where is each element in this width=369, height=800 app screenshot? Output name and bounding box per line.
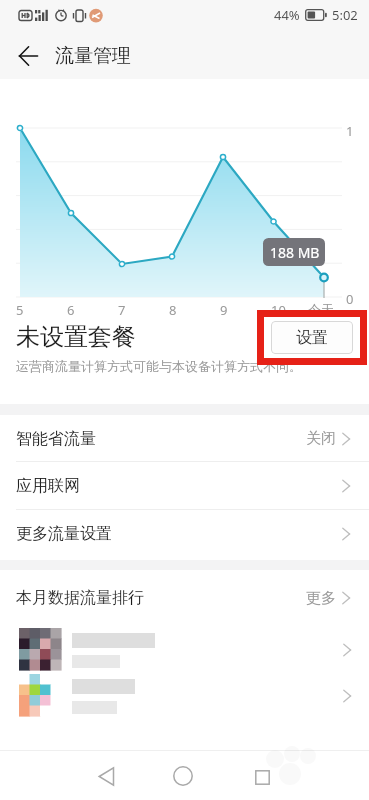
button[interactable]: 设置	[271, 321, 353, 354]
staticText: 未设置套餐	[16, 322, 136, 352]
staticText: 8	[169, 301, 177, 319]
staticText: 1	[346, 122, 354, 140]
button[interactable]: 本月数据流量排行	[0, 570, 369, 626]
staticText: 更多流量设置	[16, 524, 112, 544]
staticText: 今天	[308, 301, 334, 317]
staticText: 5:02	[332, 6, 358, 24]
button[interactable]: Back	[79, 751, 135, 800]
staticText: 9	[220, 301, 228, 319]
staticText: 本月数据流量排行	[16, 588, 144, 608]
button[interactable]	[0, 626, 369, 672]
button[interactable]: Back	[4, 32, 52, 80]
button[interactable]: 应用联网	[0, 462, 369, 509]
staticText: 6	[67, 301, 75, 319]
staticText: 设置	[296, 328, 328, 348]
staticText: 44%	[274, 6, 300, 24]
button[interactable]: 更多流量设置	[0, 510, 369, 557]
staticText: 运营商流量计算方式可能与本设备计算方式不同。	[16, 358, 302, 374]
button[interactable]: 智能省流量	[0, 415, 369, 462]
staticText: 更多	[306, 589, 336, 608]
staticText: 5	[16, 301, 24, 319]
staticText: 0	[346, 290, 354, 308]
button[interactable]	[0, 672, 369, 718]
staticText: 应用联网	[16, 476, 80, 496]
button[interactable]: Recents	[234, 752, 290, 800]
staticText: 关闭	[306, 429, 336, 448]
button[interactable]: Home	[155, 751, 211, 800]
staticText: 7	[118, 301, 126, 319]
staticText: 10	[271, 301, 286, 319]
staticText: 流量管理	[55, 44, 131, 68]
staticText: 智能省流量	[16, 429, 96, 449]
staticText: 188 MB	[270, 243, 320, 262]
